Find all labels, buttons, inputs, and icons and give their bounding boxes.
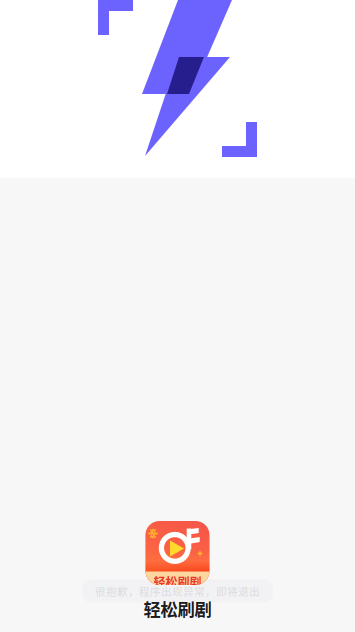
staticText: 轻松刷剧 bbox=[143, 596, 211, 621]
staticText: 很抱歉，程序出现异常，即将退出 bbox=[95, 583, 260, 599]
staticText: 轻松刷剧 bbox=[153, 573, 201, 590]
